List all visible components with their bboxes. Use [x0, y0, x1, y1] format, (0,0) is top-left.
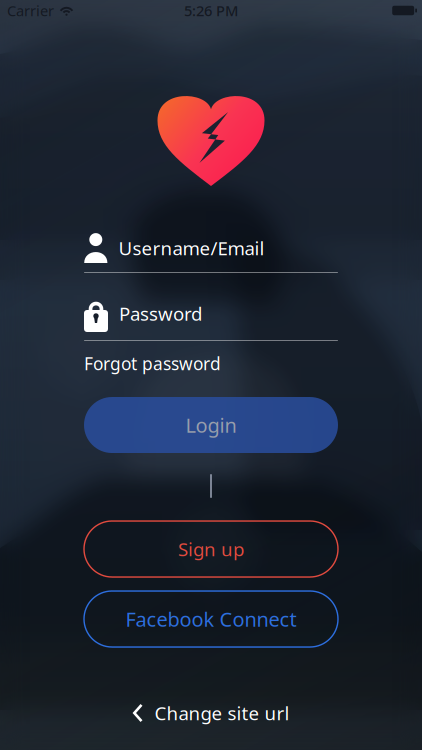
button[interactable]: Facebook Connect [84, 591, 338, 647]
staticText: Login [185, 412, 236, 438]
button[interactable]: Sign up [84, 521, 338, 577]
staticText: 5:26 PM [184, 1, 238, 20]
staticText: Password [119, 301, 202, 326]
staticText: Carrier [7, 1, 54, 20]
button[interactable]: Login [84, 397, 338, 453]
staticText: Username/Email [119, 236, 265, 260]
staticText: Forgot password [84, 352, 221, 375]
staticText: Facebook Connect [125, 606, 296, 632]
button[interactable]: Forgot password [84, 352, 221, 375]
staticText: Change site url [154, 701, 289, 725]
button[interactable]: Change site url [132, 693, 289, 733]
staticText: Sign up [178, 537, 244, 561]
